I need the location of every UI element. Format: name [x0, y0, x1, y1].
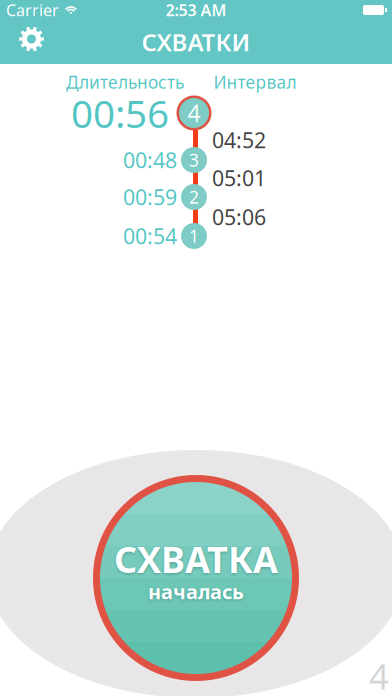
staticText: Carrier	[6, 0, 59, 21]
staticText: 00:59	[123, 183, 177, 211]
staticText: 00:54	[123, 222, 177, 250]
staticText: СХВАТКА	[114, 535, 278, 583]
staticText: СХВАТКИ	[141, 26, 250, 58]
staticText: 4	[369, 653, 389, 696]
staticText: Длительность	[66, 70, 184, 93]
staticText: 4	[187, 98, 200, 128]
staticText: 3	[189, 148, 199, 171]
staticText: началась	[148, 578, 244, 605]
staticText: 00:56	[71, 87, 169, 139]
button[interactable]: СХВАТКА	[93, 475, 299, 681]
staticText: 00:48	[123, 146, 177, 174]
button[interactable]: Настройки	[18, 26, 44, 52]
staticText: 1	[189, 224, 199, 247]
staticText: 05:01	[212, 164, 266, 192]
staticText: Интервал	[213, 70, 296, 93]
staticText: 04:52	[212, 126, 266, 154]
staticText: 05:06	[212, 203, 266, 231]
staticText: 2	[189, 185, 199, 208]
staticText: 2:53 AM	[165, 0, 226, 21]
